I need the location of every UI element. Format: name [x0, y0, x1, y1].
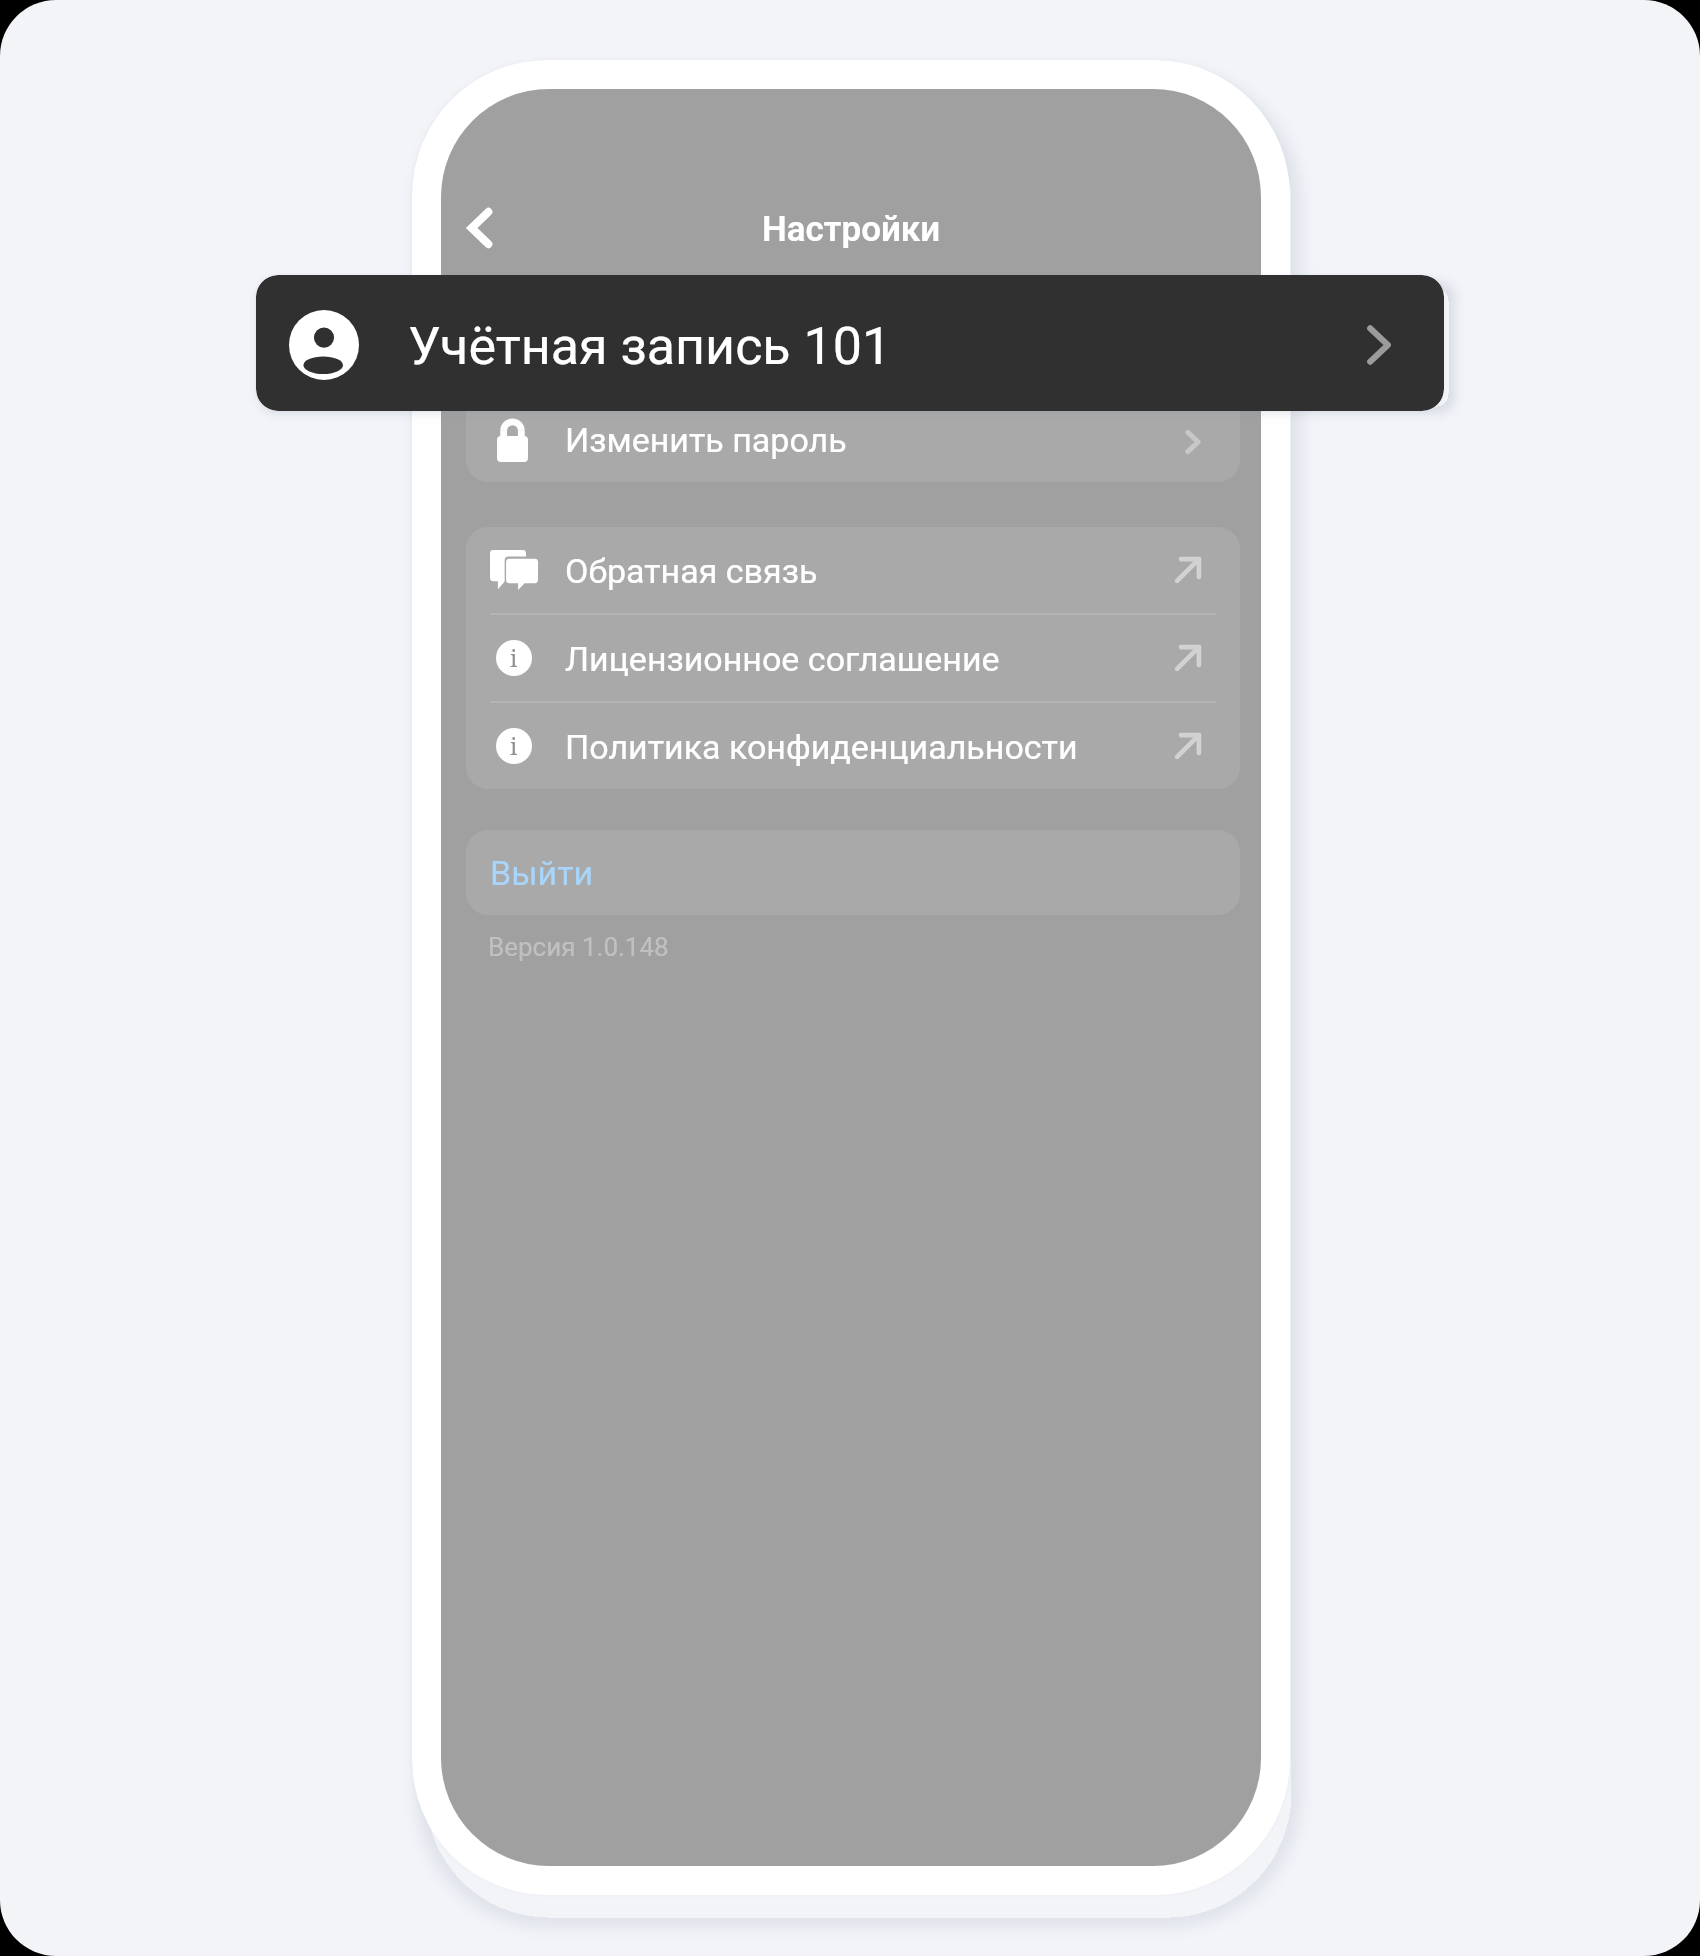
staticText: Выйти: [490, 853, 594, 893]
button[interactable]: Изменить пароль: [466, 396, 1240, 482]
button[interactable]: i: [466, 615, 1240, 701]
staticText: Политика конфиденциальности: [565, 727, 1078, 767]
staticText: Настройки: [762, 209, 941, 250]
staticText: Учётная запись 101: [565, 334, 881, 374]
staticText: i: [510, 730, 518, 761]
button[interactable]: Обратная связь: [466, 527, 1240, 613]
button[interactable]: Выйти: [466, 830, 1240, 915]
button[interactable]: Back: [447, 189, 523, 265]
button[interactable]: Учётная запись 101: [466, 310, 1240, 396]
staticText: i: [510, 642, 518, 673]
staticText: Учётная запись 101: [408, 316, 892, 377]
button[interactable]: Учётная запись 101: [256, 275, 1444, 411]
button[interactable]: i: [466, 703, 1240, 789]
staticText: Обратная связь: [565, 551, 818, 591]
staticText: Лицензионное соглашение: [565, 639, 1000, 679]
staticText: Версия 1.0.148: [488, 932, 669, 962]
staticText: Изменить пароль: [565, 420, 847, 460]
